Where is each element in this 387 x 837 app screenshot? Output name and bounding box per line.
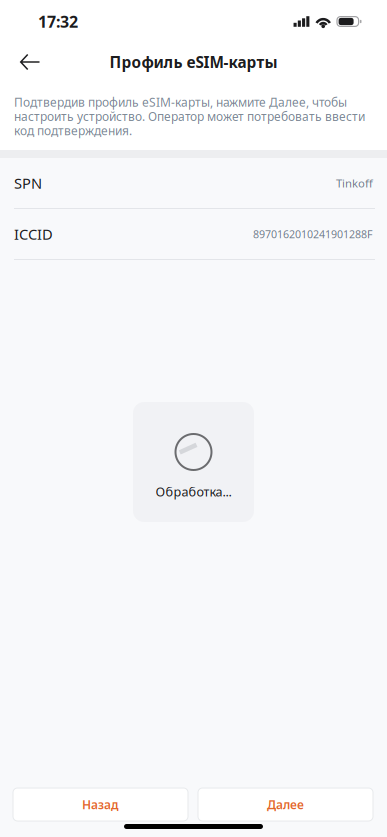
staticText: Tinkoff: [336, 175, 373, 191]
button[interactable]: Назад: [13, 788, 188, 821]
staticText: Назад: [82, 796, 119, 813]
button[interactable]: Назад: [8, 40, 52, 84]
staticText: Подтвердив профиль eSIM-карты, нажмите Д…: [14, 95, 365, 138]
staticText: Далее: [267, 796, 304, 813]
button[interactable]: Далее: [198, 788, 373, 821]
staticText: Обработка...: [155, 483, 231, 500]
staticText: ICCID: [14, 224, 53, 244]
staticText: SPN: [14, 173, 42, 193]
staticText: 17:32: [38, 11, 78, 32]
staticText: Профиль eSIM-карты: [109, 52, 277, 72]
staticText: 8970162010241901288F: [253, 227, 373, 241]
